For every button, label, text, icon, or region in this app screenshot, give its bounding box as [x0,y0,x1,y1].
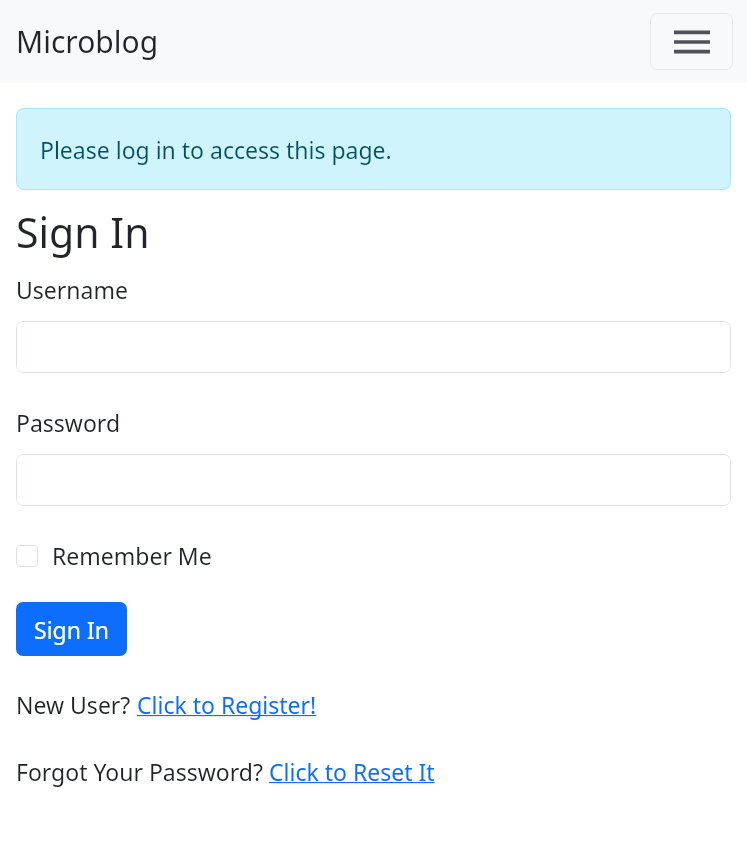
staticText: New User? [16,689,137,720]
button[interactable]: Password field [16,454,731,506]
button[interactable]: Click to Register! [137,689,317,720]
button[interactable]: Click to Reset It [269,756,435,787]
staticText: Please log in to access this page. [40,134,392,165]
staticText: Remember Me [52,540,212,571]
button[interactable]: Remember Me [16,540,212,571]
button[interactable]: Toggle navigation [650,13,733,70]
staticText: Forgot Your Password? [16,756,269,787]
staticText: Sign In [34,614,109,645]
button[interactable]: Microblog [16,21,159,62]
button[interactable]: Sign In [16,602,127,656]
staticText: Password [16,407,121,438]
staticText: Username [16,274,128,305]
button[interactable]: Username field [16,321,731,373]
staticText: Sign In [16,204,150,260]
